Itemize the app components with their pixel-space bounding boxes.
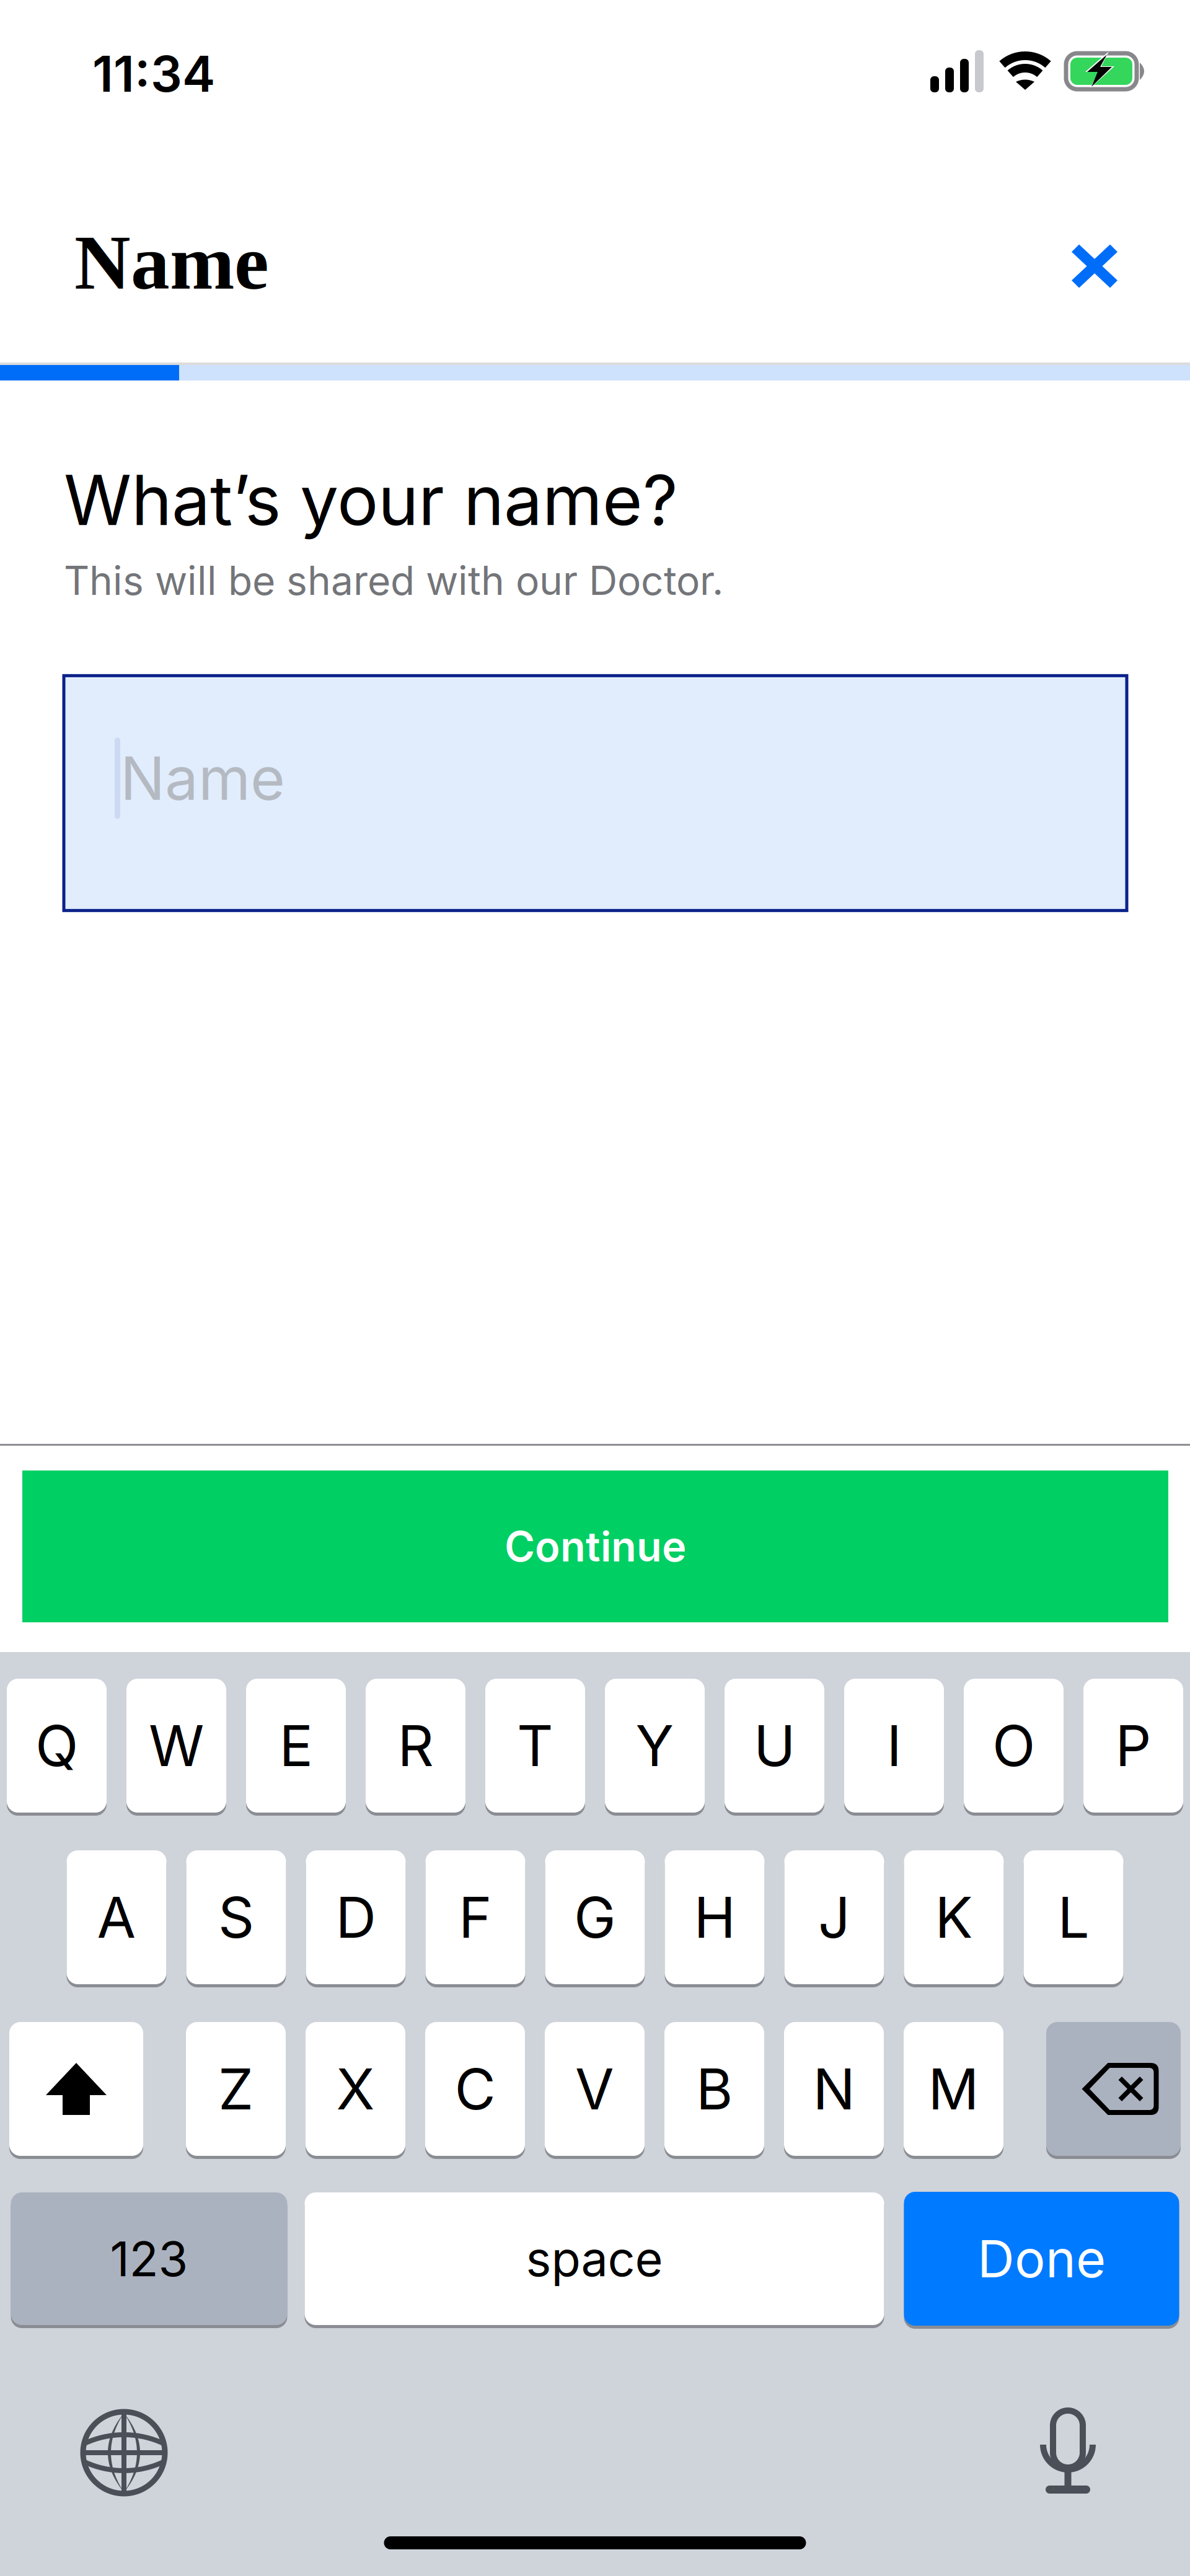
button[interactable]: S [186,1850,286,1987]
staticText: S [218,1883,254,1951]
button[interactable]: F [425,1850,525,1987]
staticText: What’s your name? [64,459,678,542]
button[interactable]: R [366,1679,465,1816]
staticText: W [149,1712,204,1780]
staticText: 11:34 [92,44,215,104]
staticText: J [818,1883,850,1951]
button[interactable]: Continue [0,1470,1190,1622]
button[interactable]: J [784,1850,884,1987]
staticText: P [1115,1712,1151,1780]
staticText: M [928,2055,979,2123]
staticText: R [398,1712,434,1780]
staticText: B [696,2055,733,2123]
staticText: L [1058,1883,1089,1951]
button[interactable]: V [545,2022,645,2159]
button[interactable]: C [425,2022,525,2159]
staticText: O [992,1712,1035,1780]
staticText: 123 [110,2230,188,2288]
button[interactable]: Next keyboard [83,2412,165,2494]
staticText: Z [218,2055,253,2123]
staticText: T [517,1712,553,1780]
staticText: C [455,2055,496,2123]
staticText: D [336,1883,376,1951]
button[interactable]: O [964,1679,1064,1816]
button[interactable]: Z [186,2022,286,2159]
button[interactable]: Delete [1046,2022,1181,2159]
button[interactable]: B [664,2022,764,2159]
button[interactable]: G [545,1850,645,1987]
staticText: Name [120,742,285,814]
staticText: G [574,1883,616,1951]
staticText: Y [636,1712,674,1780]
staticText: X [336,2055,375,2123]
staticText: Continue [505,1521,686,1571]
button[interactable]: Y [605,1679,705,1816]
staticText: Name [74,219,269,305]
staticText: U [754,1712,795,1780]
button[interactable]: Close [1051,209,1138,296]
staticText: K [935,1883,973,1951]
button[interactable]: D [306,1850,406,1987]
button[interactable]: L [1024,1850,1123,1987]
staticText: Q [35,1712,78,1780]
button[interactable]: K [904,1850,1004,1987]
button[interactable]: H [665,1850,765,1987]
staticText: V [575,2055,614,2123]
button[interactable]: E [246,1679,346,1816]
button[interactable]: X [306,2022,405,2159]
staticText: N [813,2055,855,2123]
staticText: I [887,1712,901,1780]
button[interactable]: U [725,1679,824,1816]
staticText: H [694,1883,735,1951]
button[interactable]: M [904,2022,1003,2159]
button[interactable]: space [305,2192,884,2328]
staticText: space [526,2230,663,2288]
button[interactable]: I [844,1679,944,1816]
button[interactable]: Q [7,1679,107,1816]
button[interactable]: W [126,1679,226,1816]
staticText: Done [977,2228,1106,2290]
staticText: This will be shared with our Doctor. [64,556,723,604]
button[interactable]: Name [64,676,1127,910]
button[interactable]: Done [904,2192,1179,2329]
staticText: E [279,1712,313,1780]
staticText: F [459,1883,492,1951]
button[interactable]: 123 [11,2192,287,2328]
button[interactable]: P [1083,1679,1183,1816]
button[interactable]: T [485,1679,585,1816]
button[interactable]: A [67,1850,166,1987]
button[interactable]: N [784,2022,884,2159]
button[interactable]: Dictation [1040,2409,1096,2496]
staticText: A [97,1883,136,1951]
button[interactable]: Shift [9,2022,143,2159]
